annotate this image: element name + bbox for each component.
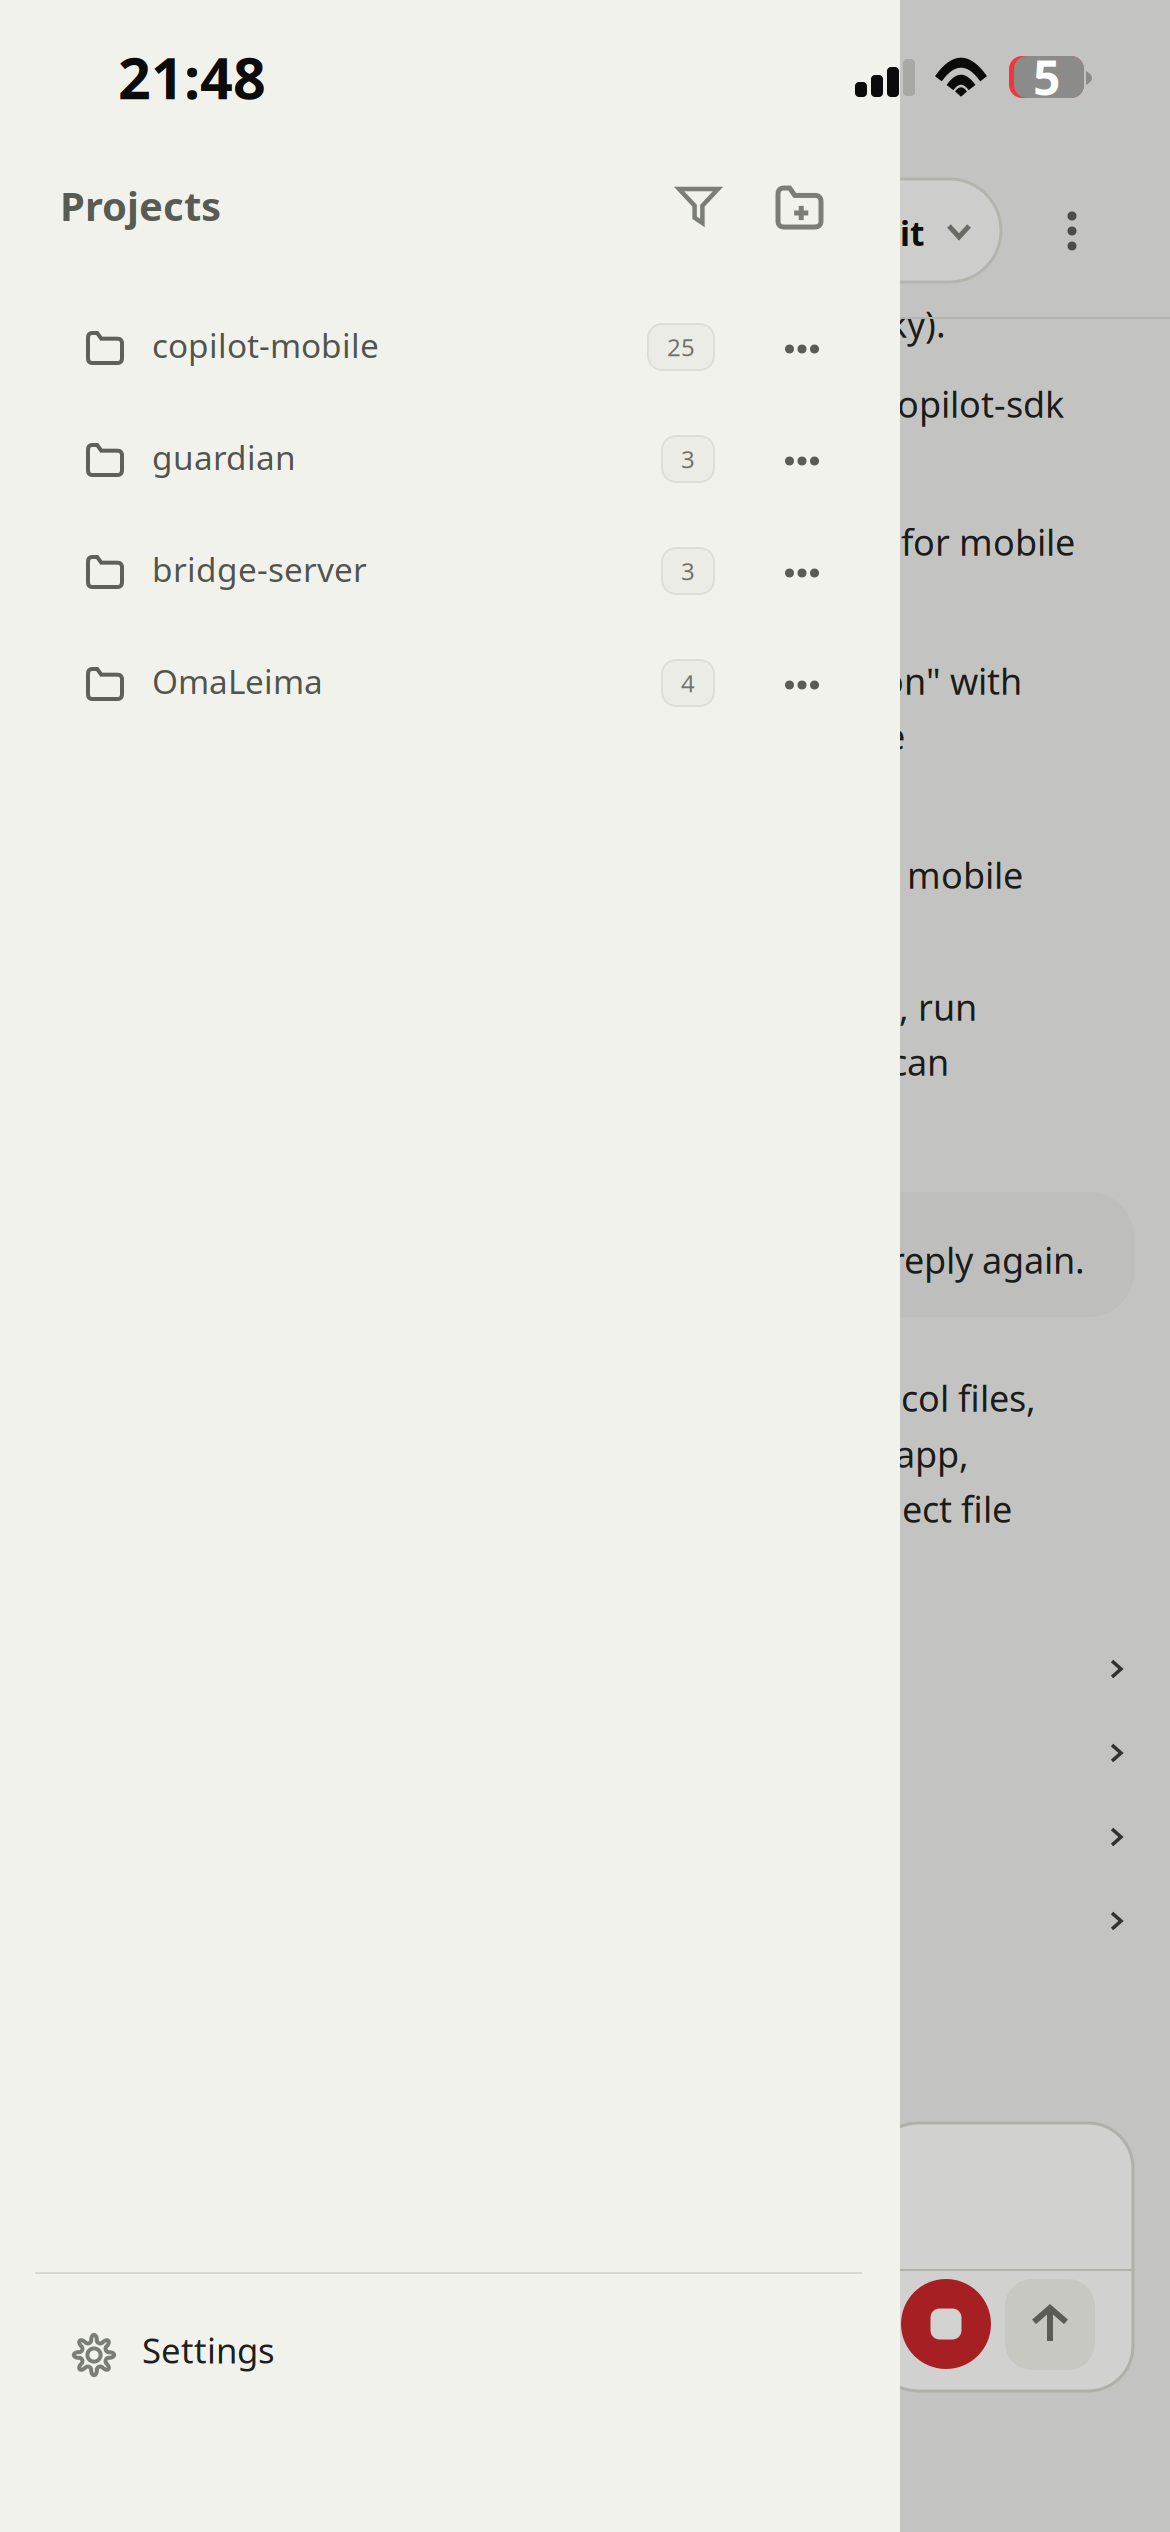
staticText: a "session" with [759,657,1022,705]
staticText: OmaLeima [152,659,323,703]
staticText: 3 [681,443,695,475]
button[interactable]: guardian [0,403,900,515]
staticText: edit the file and I'll reply again. [573,1236,1085,1284]
button[interactable]: More actions for copilot-mobile [770,329,834,369]
staticText: in the repo (copilot-sdk [678,380,1064,428]
staticText: Git [876,211,924,255]
button[interactable]: bridge-server [0,515,900,627]
button[interactable]: Open suggestion [1100,1649,1133,1689]
staticText: …notebook/remarks (quirky). [458,300,946,348]
staticText: read the protocol, run [609,983,977,1031]
staticText: Projects [60,179,221,232]
staticText: 5 [1033,45,1060,109]
button[interactable]: Open suggestion [1100,1733,1133,1773]
staticText: guardian [152,435,296,479]
button[interactable]: More options [1042,201,1102,261]
staticText: 25 [667,331,695,363]
button[interactable]: OmaLeima [0,627,900,739]
button[interactable]: Open suggestion [1100,1817,1133,1857]
staticText: plugged into the mobile [620,851,1023,899]
staticText: attach a project file [692,1485,1012,1533]
staticText: a build, so you can [639,1038,949,1086]
button[interactable]: copilot-mobile [0,291,900,403]
staticText: Settings [142,2327,275,2373]
staticText: Read the protocol files, [651,1374,1036,1422]
staticText: 21:48 [118,39,266,115]
staticText: 4 [681,667,695,699]
button[interactable]: New project [754,164,845,251]
staticText: 3 [681,555,695,587]
button[interactable]: More actions for bridge-server [770,553,834,593]
staticText: SDK surface for mobile [692,518,1075,566]
button[interactable]: Stop [901,2279,991,2369]
staticText: copilot-mobile [152,323,379,367]
button[interactable]: Open suggestion [1100,1901,1133,1941]
button[interactable]: Filter projects [655,165,742,247]
button[interactable]: Settings [0,2299,900,2444]
staticText: open the app, [736,1430,969,1478]
button[interactable]: Send [1005,2279,1095,2370]
button[interactable]: Git, change project [811,179,1001,282]
button[interactable]: More actions for OmaLeima [770,665,834,705]
staticText: bridge-server [152,547,367,591]
button[interactable]: More actions for guardian [770,441,834,481]
staticText: with a clear lifecycle [574,712,905,760]
